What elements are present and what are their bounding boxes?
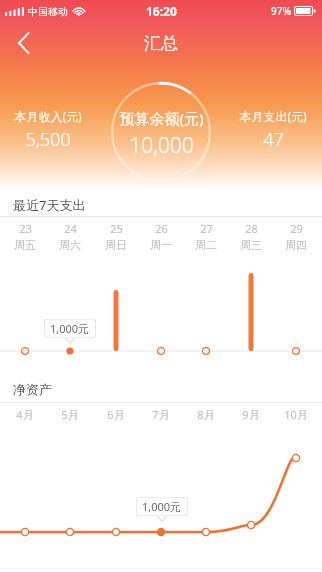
- staticText: 29: [290, 221, 303, 236]
- staticText: 5,500: [25, 127, 71, 152]
- staticText: 1,000元: [50, 321, 90, 336]
- staticText: 周三: [240, 238, 262, 252]
- button[interactable]: 28: [229, 221, 273, 252]
- button[interactable]: 29: [274, 221, 318, 252]
- button[interactable]: 4月: [3, 407, 47, 422]
- staticText: 周四: [285, 238, 307, 252]
- staticText: 27: [200, 221, 213, 236]
- staticText: 8月: [197, 407, 215, 422]
- button[interactable]: 25: [94, 221, 138, 252]
- staticText: 26: [155, 221, 168, 236]
- staticText: 周六: [59, 238, 81, 252]
- staticText: 23: [19, 221, 32, 236]
- staticText: 1,000元: [142, 499, 182, 514]
- button[interactable]: 预算余额(元): [111, 108, 211, 160]
- staticText: 25: [110, 221, 123, 236]
- staticText: 28: [245, 221, 258, 236]
- staticText: 4月: [16, 407, 34, 422]
- staticText: 16:20: [146, 3, 177, 19]
- staticText: 汇总: [144, 33, 178, 54]
- staticText: 24: [64, 221, 77, 236]
- staticText: 7月: [152, 407, 170, 422]
- staticText: 5月: [61, 407, 79, 422]
- staticText: 最近7天支出: [13, 196, 86, 214]
- staticText: 净资产: [13, 381, 52, 397]
- button[interactable]: 7月: [139, 407, 183, 422]
- button[interactable]: 23: [3, 221, 47, 252]
- staticText: 周五: [14, 238, 36, 252]
- button[interactable]: Back: [0, 22, 46, 64]
- button[interactable]: 6月: [94, 407, 138, 422]
- button[interactable]: 27: [184, 221, 228, 252]
- staticText: 9月: [242, 407, 260, 422]
- staticText: 6月: [107, 407, 125, 422]
- button[interactable]: 本月支出(元): [229, 108, 317, 152]
- button[interactable]: 8月: [184, 407, 228, 422]
- staticText: 周一: [150, 238, 172, 252]
- staticText: 中国移动: [28, 5, 68, 18]
- button[interactable]: 10月: [274, 407, 318, 422]
- staticText: 预算余额(元): [119, 108, 204, 128]
- button[interactable]: 24: [48, 221, 92, 252]
- staticText: 47: [263, 127, 284, 152]
- button[interactable]: 本月收入(元): [4, 108, 92, 152]
- staticText: 周日: [105, 238, 127, 252]
- button[interactable]: 5月: [48, 407, 92, 422]
- staticText: 97%: [271, 4, 291, 18]
- staticText: 10,000: [129, 131, 194, 160]
- staticText: 本月收入(元): [14, 108, 82, 124]
- button[interactable]: 9月: [229, 407, 273, 422]
- staticText: 周二: [195, 238, 217, 252]
- staticText: 本月支出(元): [239, 108, 307, 124]
- staticText: 10月: [284, 407, 308, 422]
- button[interactable]: 26: [139, 221, 183, 252]
